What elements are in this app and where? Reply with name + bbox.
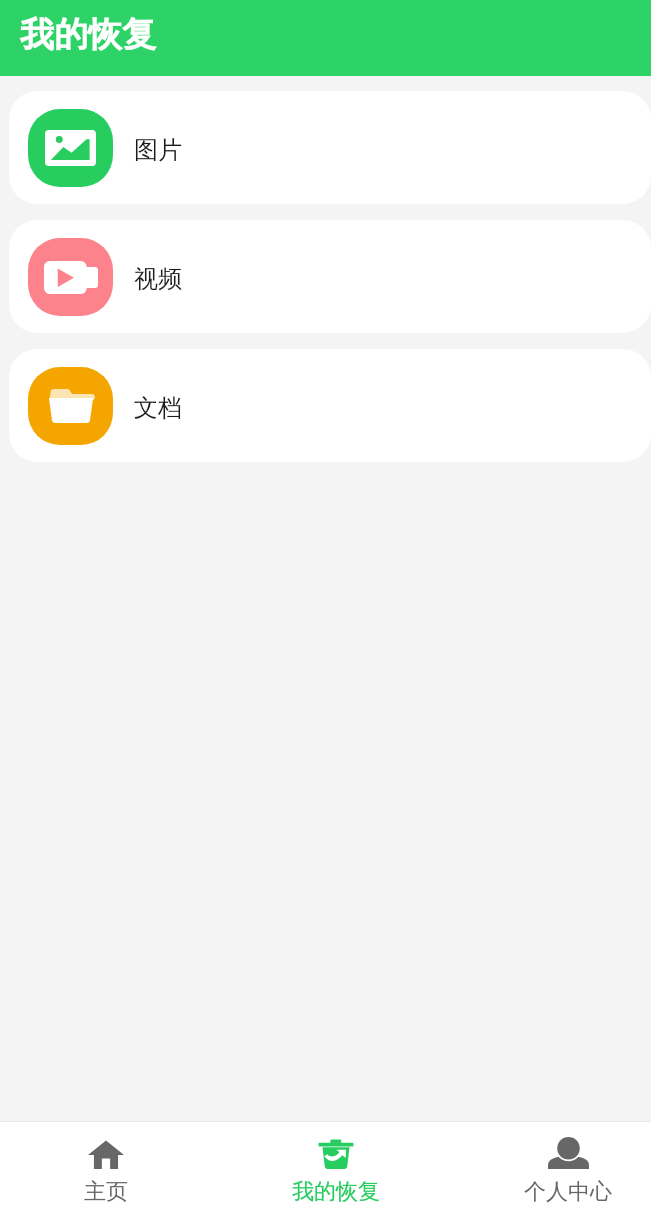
staticText: 视频	[134, 264, 182, 294]
staticText: 我的恢复	[20, 13, 156, 56]
staticText: 个人中心	[524, 1178, 612, 1206]
button[interactable]: 图片	[9, 91, 651, 204]
staticText: 主页	[84, 1178, 128, 1206]
other: My recovery	[318, 1139, 354, 1169]
staticText: 我的恢复	[292, 1178, 380, 1206]
button[interactable]: Home	[26, 1122, 186, 1207]
staticText: 图片	[134, 135, 182, 165]
button[interactable]: My recovery	[256, 1122, 416, 1207]
other: Home	[88, 1140, 124, 1169]
button[interactable]: 视频	[9, 220, 651, 333]
button[interactable]: Profile	[488, 1122, 648, 1207]
button[interactable]: 文档	[9, 349, 651, 462]
other: Profile	[548, 1140, 589, 1169]
staticText: 文档	[134, 393, 182, 423]
